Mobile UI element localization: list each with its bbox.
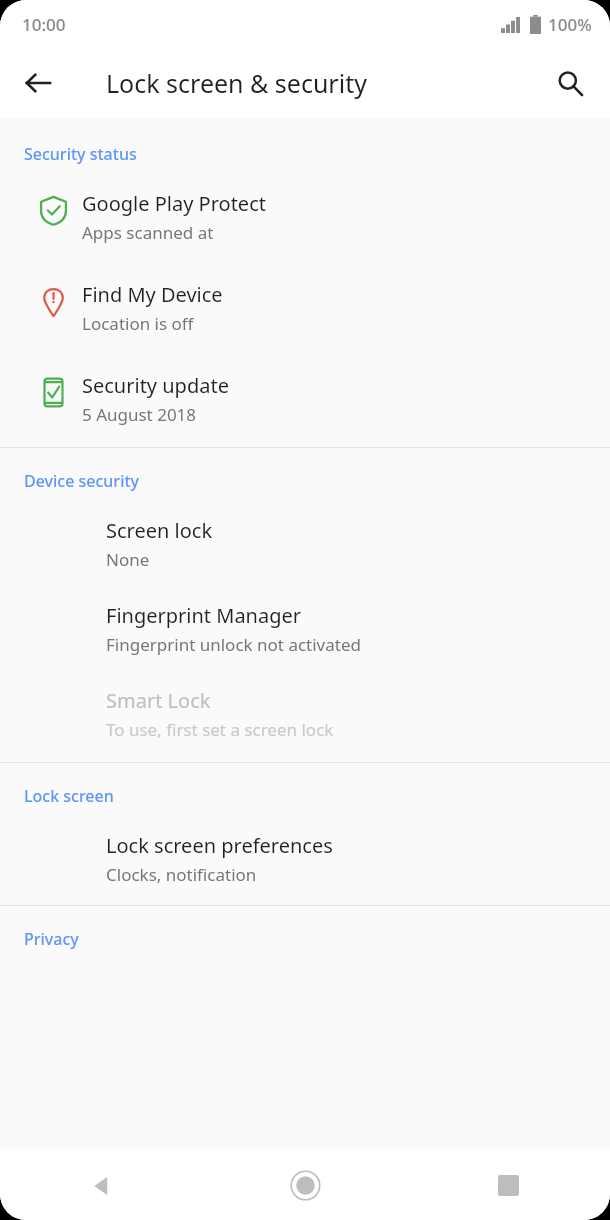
staticText: Security status bbox=[24, 143, 137, 165]
staticText: None bbox=[106, 548, 150, 571]
button[interactable]: Back bbox=[10, 55, 66, 111]
button[interactable]: Fingerprint Manager bbox=[0, 600, 610, 658]
staticText: Google Play Protect bbox=[82, 190, 266, 217]
staticText: Fingerprint Manager bbox=[106, 602, 302, 629]
staticText: Smart Lock bbox=[106, 687, 211, 714]
staticText: 10:00 bbox=[22, 13, 66, 36]
staticText: Clocks, notification bbox=[106, 863, 257, 886]
button[interactable]: Lock screen preferences bbox=[0, 830, 610, 888]
button[interactable]: Find My Device bbox=[0, 277, 610, 339]
button[interactable]: Google Play Protect bbox=[0, 186, 610, 248]
staticText: Privacy bbox=[24, 928, 79, 950]
button[interactable]: Back bbox=[0, 1151, 204, 1220]
staticText: Fingerprint unlock not activated bbox=[106, 633, 361, 656]
button[interactable]: Screen lock bbox=[0, 515, 610, 573]
button[interactable]: Search bbox=[544, 57, 596, 109]
staticText: Lock screen bbox=[24, 785, 114, 807]
staticText: Security update bbox=[82, 372, 229, 399]
button[interactable]: Home bbox=[204, 1151, 407, 1220]
staticText: To use, first set a screen lock bbox=[106, 718, 334, 741]
staticText: Apps scanned at bbox=[82, 221, 214, 244]
staticText: 5 August 2018 bbox=[82, 403, 197, 426]
staticText: 100% bbox=[548, 13, 592, 36]
staticText: Device security bbox=[24, 470, 140, 492]
button[interactable]: Smart Lock bbox=[0, 685, 610, 743]
button[interactable]: Recents bbox=[407, 1151, 610, 1220]
staticText: Lock screen & security bbox=[106, 66, 367, 100]
staticText: Location is off bbox=[82, 312, 194, 335]
staticText: Lock screen preferences bbox=[106, 832, 333, 859]
button[interactable]: Security update bbox=[0, 368, 610, 430]
staticText: Screen lock bbox=[106, 517, 213, 544]
staticText: Find My Device bbox=[82, 281, 223, 308]
